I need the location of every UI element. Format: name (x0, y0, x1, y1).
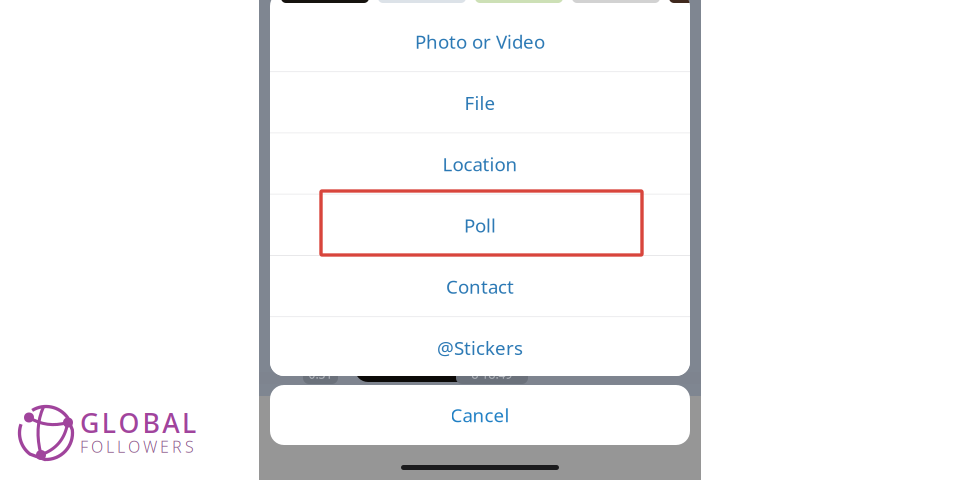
staticText: Contact (446, 274, 514, 299)
button[interactable]: Cancel (270, 385, 690, 445)
staticText: FOLLOWERS (80, 436, 194, 457)
button[interactable]: Location (270, 133, 690, 195)
button[interactable]: Poll (270, 195, 690, 256)
button[interactable]: @Stickers (270, 317, 690, 378)
staticText: GLOBAL (80, 405, 196, 440)
staticText: 0:31 (308, 366, 332, 382)
button[interactable]: Photo or Video (270, 11, 690, 72)
button[interactable]: Contact (270, 256, 690, 317)
staticText: Location (442, 152, 517, 176)
staticText: Poll (464, 213, 496, 238)
staticText: Photo or Video (415, 29, 545, 54)
button[interactable]: File (270, 72, 690, 133)
staticText: File (464, 90, 495, 115)
staticText: @Stickers (437, 335, 523, 360)
staticText: Cancel (450, 403, 509, 427)
staticText: 8 18:49 (471, 366, 512, 382)
